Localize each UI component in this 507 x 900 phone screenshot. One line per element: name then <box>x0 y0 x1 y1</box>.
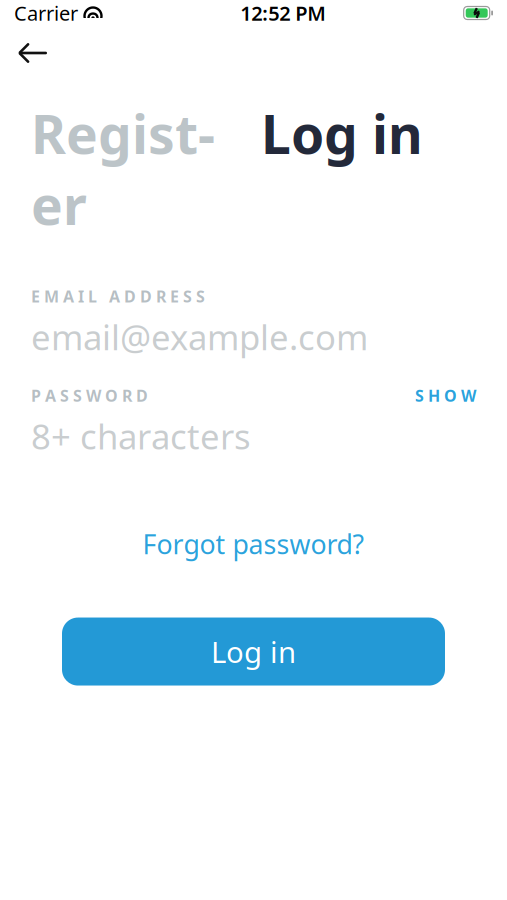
staticText: Register <box>31 98 215 240</box>
staticText: 8+ characters <box>31 413 251 459</box>
staticText: 12:52 PM <box>240 0 326 26</box>
button[interactable]: Back <box>6 30 60 76</box>
button[interactable]: 8+ characters <box>0 414 507 458</box>
staticText: E M A I L A D D R E S S <box>31 286 205 307</box>
staticText: P A S S W O R D <box>31 385 148 406</box>
button[interactable]: Forgot password? <box>132 520 374 567</box>
staticText: Log in <box>261 98 423 169</box>
staticText: Log in <box>211 632 296 671</box>
button[interactable]: Register <box>31 98 215 240</box>
button[interactable]: S H O W <box>415 385 476 406</box>
staticText: Carrier <box>14 0 78 26</box>
staticText: email@example.com <box>31 314 368 360</box>
button[interactable]: Log in <box>261 98 423 169</box>
button[interactable]: Log in <box>62 618 445 686</box>
staticText: S H O W <box>415 385 476 406</box>
staticText: Forgot password? <box>142 526 364 561</box>
button[interactable]: email@example.com <box>0 315 507 359</box>
